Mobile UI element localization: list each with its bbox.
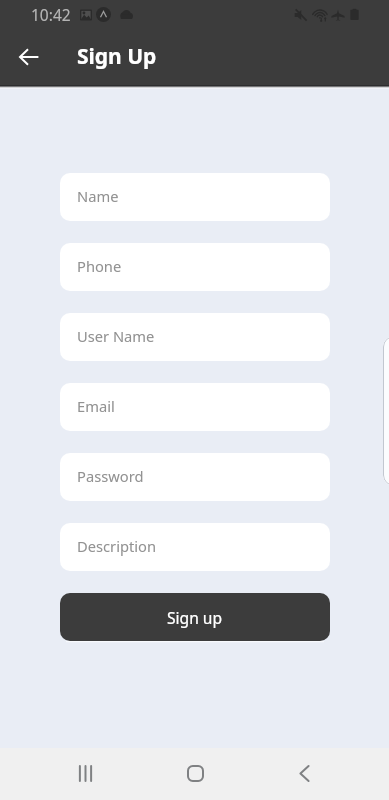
staticText: Sign up xyxy=(167,607,223,628)
button[interactable]: Recents xyxy=(61,749,109,797)
staticText: User Name xyxy=(77,326,155,346)
button[interactable]: Name xyxy=(60,173,330,221)
staticText: Name xyxy=(77,186,119,206)
button[interactable]: User Name xyxy=(60,313,330,361)
button[interactable]: Sign up xyxy=(60,593,330,641)
button[interactable]: Password xyxy=(60,453,330,501)
staticText: Sign Up xyxy=(77,42,157,71)
staticText: Description xyxy=(77,536,157,556)
staticText: Phone xyxy=(77,256,122,276)
button[interactable]: Phone xyxy=(60,243,330,291)
staticText: Email xyxy=(77,396,115,416)
button[interactable]: Home xyxy=(171,749,219,797)
button[interactable]: Email xyxy=(60,383,330,431)
staticText: Password xyxy=(77,466,144,486)
staticText: 10:42 xyxy=(31,4,71,25)
button[interactable]: Description xyxy=(60,523,330,571)
button[interactable]: Back xyxy=(280,749,328,797)
button[interactable]: Back xyxy=(11,39,47,75)
